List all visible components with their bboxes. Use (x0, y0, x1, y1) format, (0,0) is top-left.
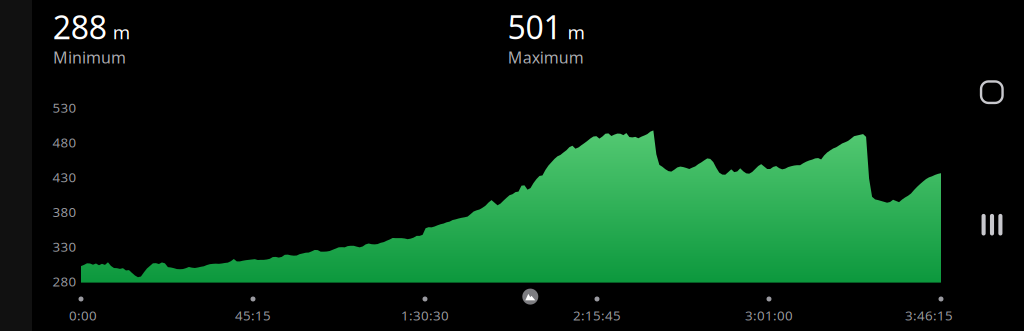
staticText: 2:15:45 (573, 306, 621, 324)
staticText: m (113, 19, 130, 44)
staticText: 45:15 (235, 306, 271, 324)
staticText: 288 (53, 5, 107, 48)
staticText: 280 (53, 272, 77, 290)
staticText: 3:46:15 (905, 306, 953, 324)
button[interactable]: Show splits (970, 203, 1014, 247)
staticText: 0:00 (69, 306, 97, 324)
staticText: 380 (53, 203, 77, 221)
staticText: Minimum (53, 47, 126, 68)
staticText: 530 (53, 99, 77, 116)
staticText: 480 (53, 133, 77, 151)
staticText: Maximum (508, 47, 584, 68)
staticText: 501 (507, 5, 561, 48)
staticText: 3:01:00 (745, 306, 793, 324)
staticText: m (567, 19, 584, 44)
staticText: 1:30:30 (401, 306, 449, 324)
staticText: 430 (53, 168, 77, 186)
button[interactable]: Highest point (522, 289, 538, 305)
button[interactable]: Full screen (970, 70, 1014, 114)
staticText: 330 (53, 238, 77, 255)
